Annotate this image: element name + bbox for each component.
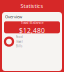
staticText: $12,480 — [19, 26, 45, 35]
staticText: Statistics — [20, 2, 43, 10]
staticText: Food — [16, 35, 23, 39]
staticText: Overview — [5, 14, 22, 19]
staticText: Bills — [16, 44, 22, 48]
staticText: Travel — [16, 40, 23, 43]
staticText: Total Balance — [20, 20, 43, 25]
